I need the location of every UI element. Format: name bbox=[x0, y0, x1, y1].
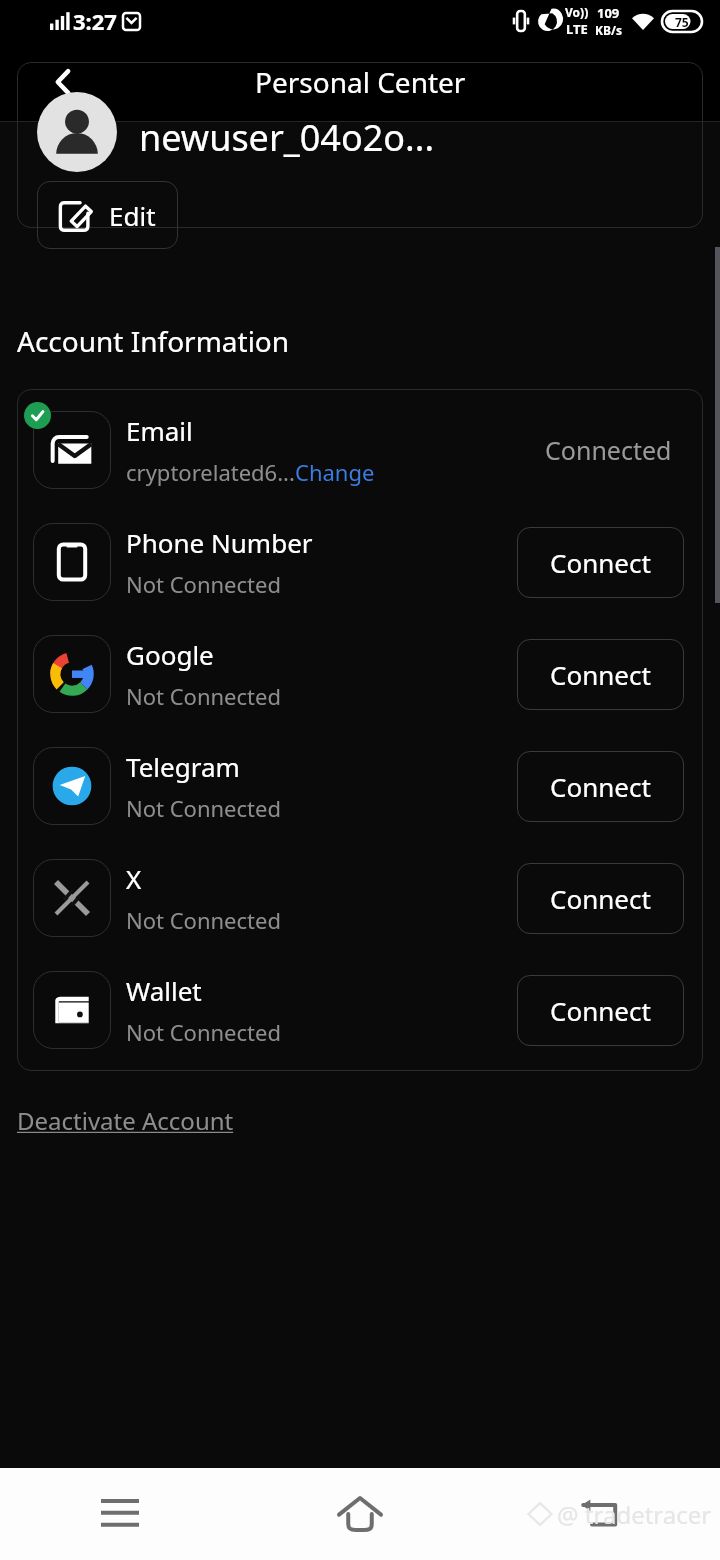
staticText: Not Connected bbox=[126, 1017, 281, 1047]
staticText: Not Connected bbox=[126, 681, 281, 711]
button[interactable]: Back bbox=[480, 1468, 720, 1560]
button[interactable]: Telegram bbox=[17, 730, 703, 842]
staticText: LTE bbox=[566, 20, 588, 38]
button[interactable]: Connect bbox=[517, 751, 684, 822]
staticText: @ tradetracer bbox=[557, 1498, 712, 1531]
staticText: Vo)) bbox=[565, 4, 589, 20]
staticText: 109 bbox=[597, 4, 620, 22]
staticText: Google bbox=[126, 637, 214, 672]
button[interactable]: Recent apps bbox=[0, 1468, 240, 1560]
button[interactable]: Edit bbox=[37, 181, 178, 249]
staticText: X bbox=[126, 861, 142, 896]
staticText: Phone Number bbox=[126, 525, 313, 560]
button[interactable]: Connect bbox=[517, 863, 684, 934]
staticText: newuser_04o2o... bbox=[139, 113, 435, 162]
button[interactable]: Change bbox=[295, 457, 375, 487]
staticText: Not Connected bbox=[126, 569, 281, 599]
staticText: Connect bbox=[550, 993, 651, 1028]
staticText: cryptorelated6... bbox=[126, 457, 295, 487]
button[interactable]: Google bbox=[17, 618, 703, 730]
staticText: 75 bbox=[675, 14, 689, 30]
staticText: Account Information bbox=[17, 322, 290, 360]
button[interactable]: Phone Number bbox=[17, 506, 703, 618]
staticText: Connect bbox=[550, 657, 651, 692]
staticText: Personal Center bbox=[255, 63, 466, 101]
staticText: 3:27 bbox=[73, 6, 117, 36]
staticText: Edit bbox=[109, 198, 156, 233]
button[interactable] bbox=[17, 62, 703, 228]
button[interactable]: Wallet bbox=[17, 954, 703, 1066]
staticText: Connected bbox=[545, 433, 672, 467]
button[interactable]: Deactivate Account bbox=[17, 1104, 234, 1137]
staticText: KB/s bbox=[595, 22, 622, 38]
staticText: Not Connected bbox=[126, 905, 281, 935]
staticText: Connect bbox=[550, 769, 651, 804]
button[interactable]: X bbox=[17, 842, 703, 954]
staticText: Connect bbox=[550, 545, 651, 580]
staticText: Not Connected bbox=[126, 793, 281, 823]
button[interactable]: Home bbox=[240, 1468, 480, 1560]
staticText: Email bbox=[126, 413, 193, 448]
button[interactable]: Email bbox=[17, 394, 703, 506]
button[interactable]: Connect bbox=[517, 975, 684, 1046]
button[interactable]: Back bbox=[32, 50, 96, 114]
staticText: Connect bbox=[550, 881, 651, 916]
button[interactable]: Connect bbox=[517, 639, 684, 710]
staticText: Wallet bbox=[126, 973, 202, 1008]
button[interactable]: Connect bbox=[517, 527, 684, 598]
staticText: Telegram bbox=[126, 749, 240, 784]
